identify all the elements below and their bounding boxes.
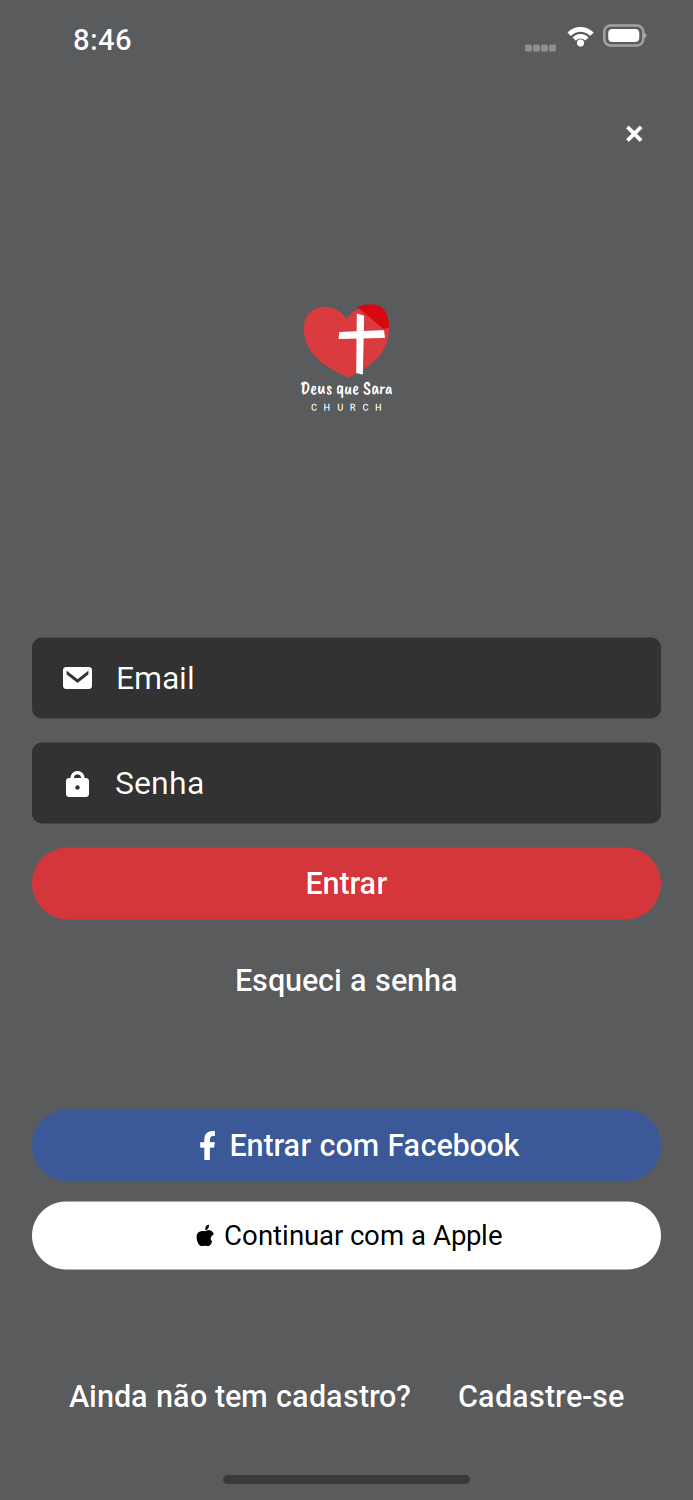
staticText: Ainda não tem cadastro? (69, 1378, 411, 1414)
staticText: Cadastre-se (458, 1378, 624, 1414)
staticText: Senha (115, 764, 204, 802)
staticText: Deus que Sara (300, 376, 393, 399)
button[interactable]: Entrar com Facebook (32, 1109, 661, 1181)
button[interactable]: Continuar com a Apple (32, 1201, 661, 1269)
staticText: Esqueci a senha (235, 962, 458, 998)
staticText: Email (116, 659, 195, 697)
button[interactable]: Email (32, 637, 661, 718)
staticText: Continuar com a Apple (224, 1219, 503, 1252)
staticText: 8:46 (73, 23, 132, 57)
button[interactable]: Esqueci a senha (219, 956, 474, 1004)
staticText: Entrar com Facebook (229, 1127, 519, 1163)
staticText: CHURCH (311, 402, 382, 413)
button[interactable]: Cadastre-se (458, 1378, 624, 1414)
staticText: Entrar (305, 865, 387, 901)
button[interactable]: Senha (32, 742, 661, 823)
button[interactable]: Entrar (32, 847, 661, 919)
button[interactable]: Close (608, 108, 660, 159)
